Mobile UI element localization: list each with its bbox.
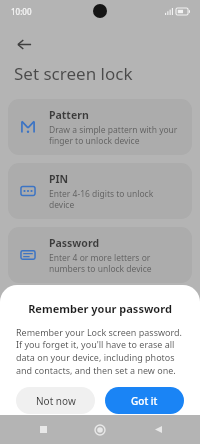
- staticText: Enter 4 or more letters or numbers to un…: [49, 252, 180, 274]
- staticText: Draw a simple pattern with your finger t…: [49, 124, 180, 146]
- staticText: Enter 4-16 digits to unlock device: [49, 188, 180, 210]
- button[interactable]: Recent apps: [28, 415, 58, 444]
- button[interactable]: Not now: [16, 387, 95, 414]
- button[interactable]: Home: [85, 415, 115, 444]
- staticText: Not now: [36, 394, 76, 408]
- staticText: 10:00: [11, 6, 32, 17]
- button[interactable]: Back: [8, 28, 40, 60]
- button[interactable]: Got it: [105, 387, 184, 414]
- staticText: Set screen lock: [14, 62, 133, 85]
- button[interactable]: PIN: [8, 163, 192, 219]
- staticText: Remember your password: [28, 301, 172, 316]
- button[interactable]: Pattern: [8, 99, 192, 155]
- staticText: Password: [49, 236, 100, 250]
- button[interactable]: Back: [143, 415, 173, 444]
- staticText: Got it: [131, 394, 158, 408]
- button[interactable]: Password: [8, 227, 192, 283]
- staticText: Pattern: [49, 108, 89, 122]
- staticText: PIN: [49, 172, 69, 186]
- staticText: Remember your Lock screen password. If y…: [16, 326, 184, 377]
